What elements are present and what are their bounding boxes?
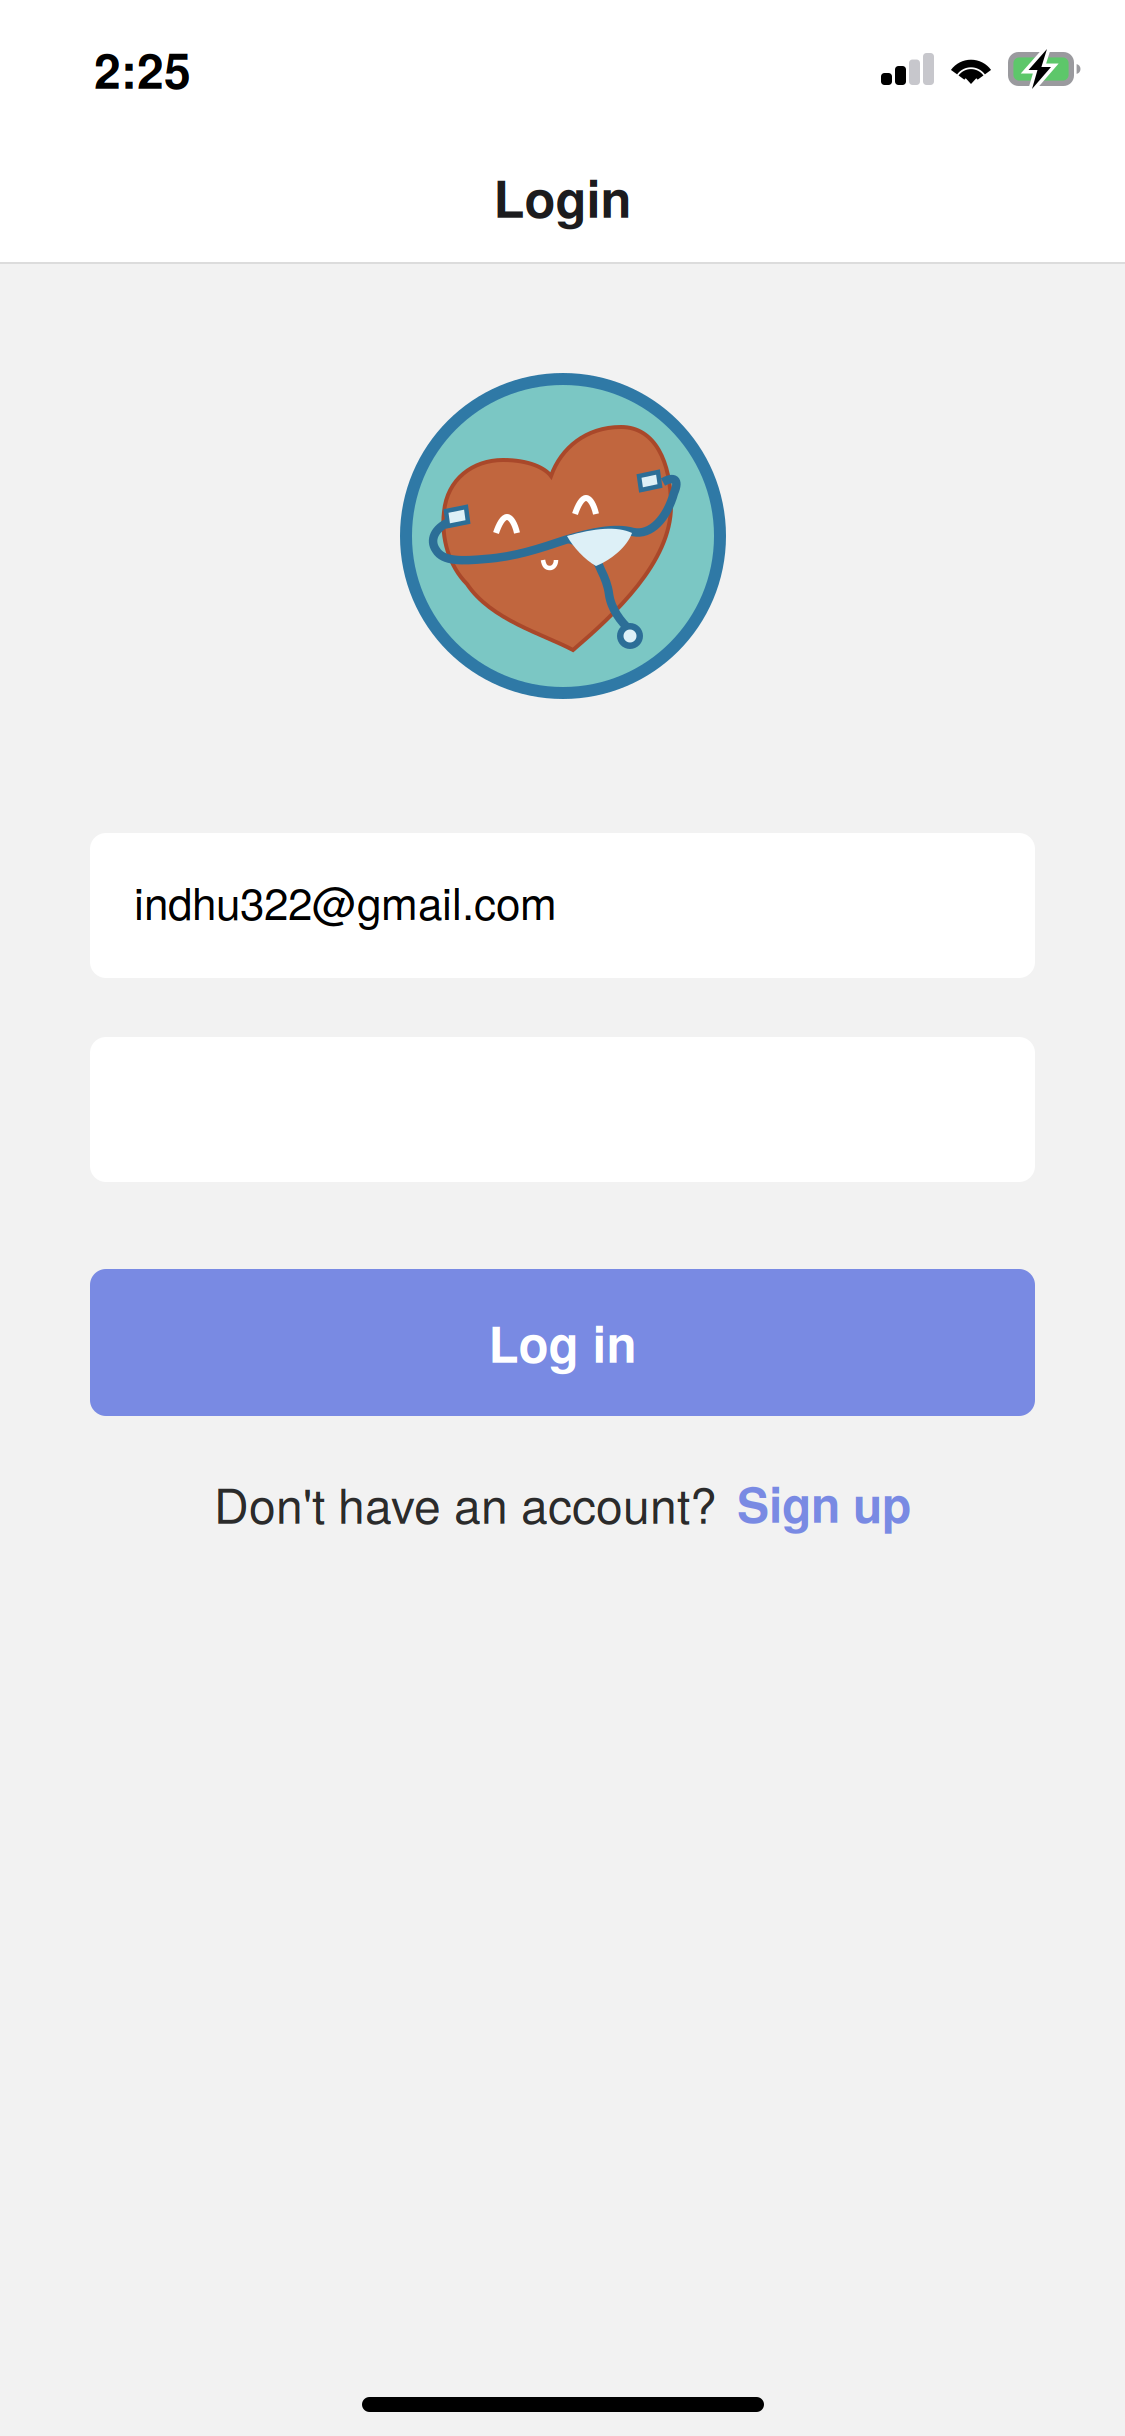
button[interactable]: indhu322@gmail.com bbox=[90, 833, 1035, 978]
staticText: Sign up bbox=[737, 1469, 911, 1537]
staticText: indhu322@gmail.com bbox=[134, 869, 557, 932]
staticText: Login bbox=[493, 161, 631, 233]
staticText: 2:25 bbox=[94, 35, 191, 103]
staticText: Log in bbox=[488, 1307, 636, 1378]
button[interactable]: Sign up bbox=[737, 1469, 911, 1537]
staticText: Don't have an account? bbox=[214, 1469, 717, 1537]
button[interactable]: Log in bbox=[90, 1269, 1035, 1416]
